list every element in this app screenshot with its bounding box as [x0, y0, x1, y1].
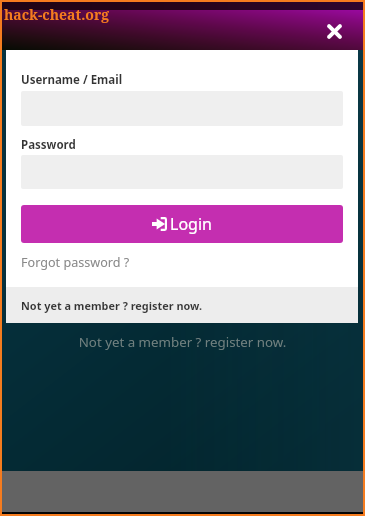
- button[interactable]: Not yet a member ? register now.: [2, 333, 363, 351]
- button[interactable]: Forgot password ?: [21, 254, 130, 271]
- staticText: Password: [21, 137, 76, 153]
- staticText: Login: [170, 213, 212, 235]
- button[interactable]: Close: [319, 16, 349, 46]
- staticText: hack-cheat.org: [4, 5, 110, 24]
- staticText: Not yet a member ? register now.: [21, 298, 203, 313]
- staticText: Username / Email: [21, 72, 123, 88]
- button[interactable]: Not yet a member ? register now.: [6, 287, 358, 323]
- button[interactable]: Login: [21, 205, 343, 243]
